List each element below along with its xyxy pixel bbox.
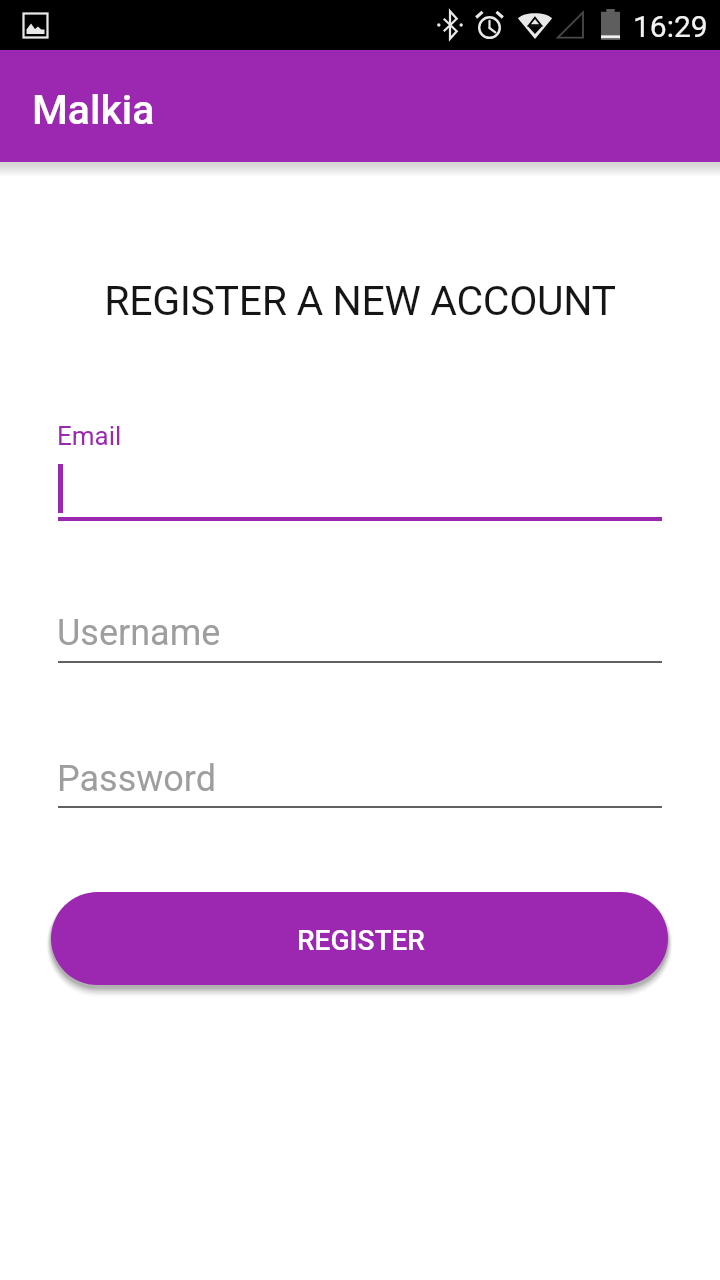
button[interactable]: Username [58, 600, 662, 663]
staticText: 16:29 [633, 9, 708, 44]
other: Screenshot captured [23, 13, 48, 38]
staticText: REGISTER [297, 924, 425, 957]
staticText: Password [57, 758, 217, 800]
staticText: Malkia [32, 86, 155, 134]
staticText: Email [57, 421, 122, 451]
staticText: Username [57, 612, 221, 654]
button[interactable]: REGISTER [51, 892, 668, 985]
staticText: REGISTER A NEW ACCOUNT [0, 277, 720, 325]
button[interactable]: Password [58, 745, 662, 808]
button[interactable]: Email [58, 412, 662, 521]
